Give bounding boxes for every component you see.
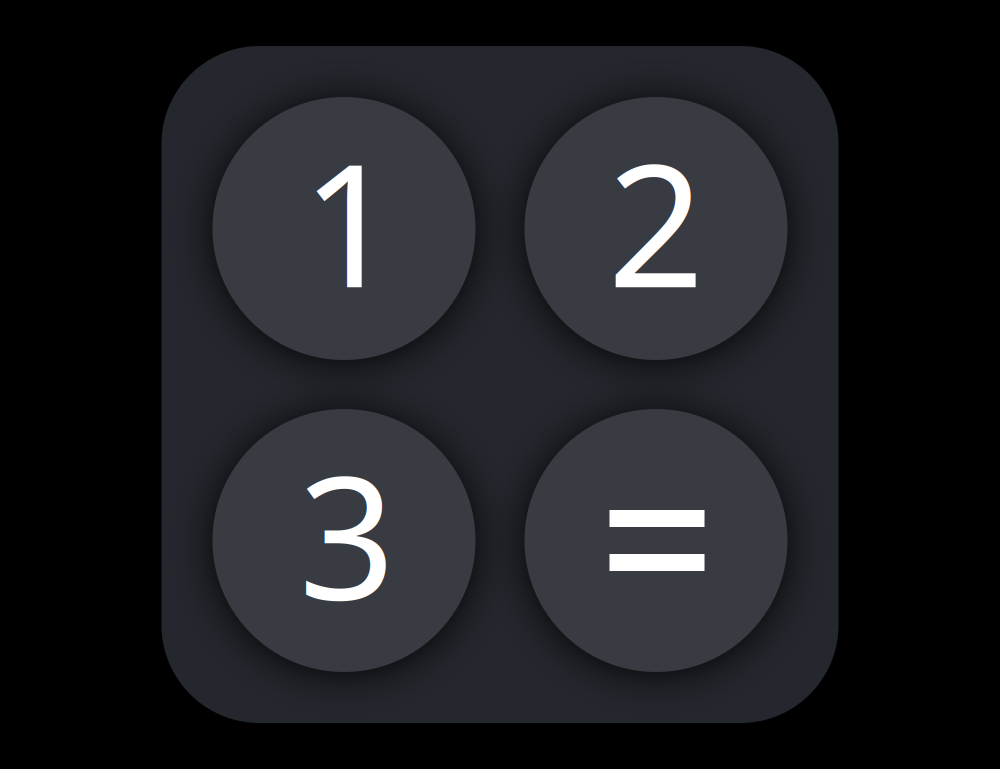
button[interactable]: 3: [212, 409, 475, 672]
button[interactable]: Equals: [524, 409, 787, 672]
staticText: 1: [301, 109, 398, 334]
button[interactable]: 2: [524, 97, 787, 360]
staticText: 2: [607, 109, 704, 334]
staticText: 3: [298, 421, 395, 646]
button[interactable]: 1: [212, 97, 475, 360]
